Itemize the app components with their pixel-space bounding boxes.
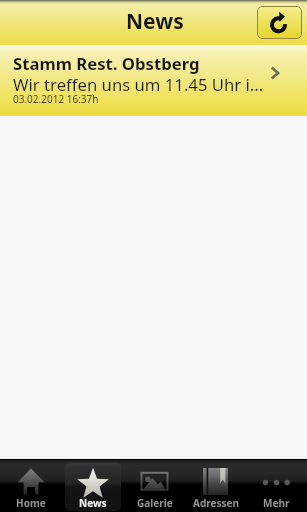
- staticText: 03.02.2012 16:37h: [13, 92, 99, 106]
- staticText: Wir treffen uns um 11.45 Uhr i...: [13, 73, 283, 96]
- button[interactable]: Stamm Rest. Obstberg: [0, 45, 307, 116]
- staticText: News: [126, 7, 184, 36]
- staticText: Stamm Rest. Obstberg: [13, 52, 200, 75]
- staticText: Home: [16, 496, 46, 510]
- button[interactable]: Adressen: [188, 463, 243, 511]
- staticText: Mehr: [263, 496, 290, 510]
- button[interactable]: Mehr: [249, 463, 304, 511]
- button[interactable]: Galerie: [127, 463, 182, 511]
- staticText: News: [79, 496, 107, 510]
- staticText: Galerie: [137, 496, 173, 510]
- button[interactable]: News: [65, 463, 121, 511]
- button[interactable]: Home: [3, 463, 59, 511]
- staticText: Adressen: [193, 496, 239, 510]
- button[interactable]: Refresh: [257, 6, 302, 39]
